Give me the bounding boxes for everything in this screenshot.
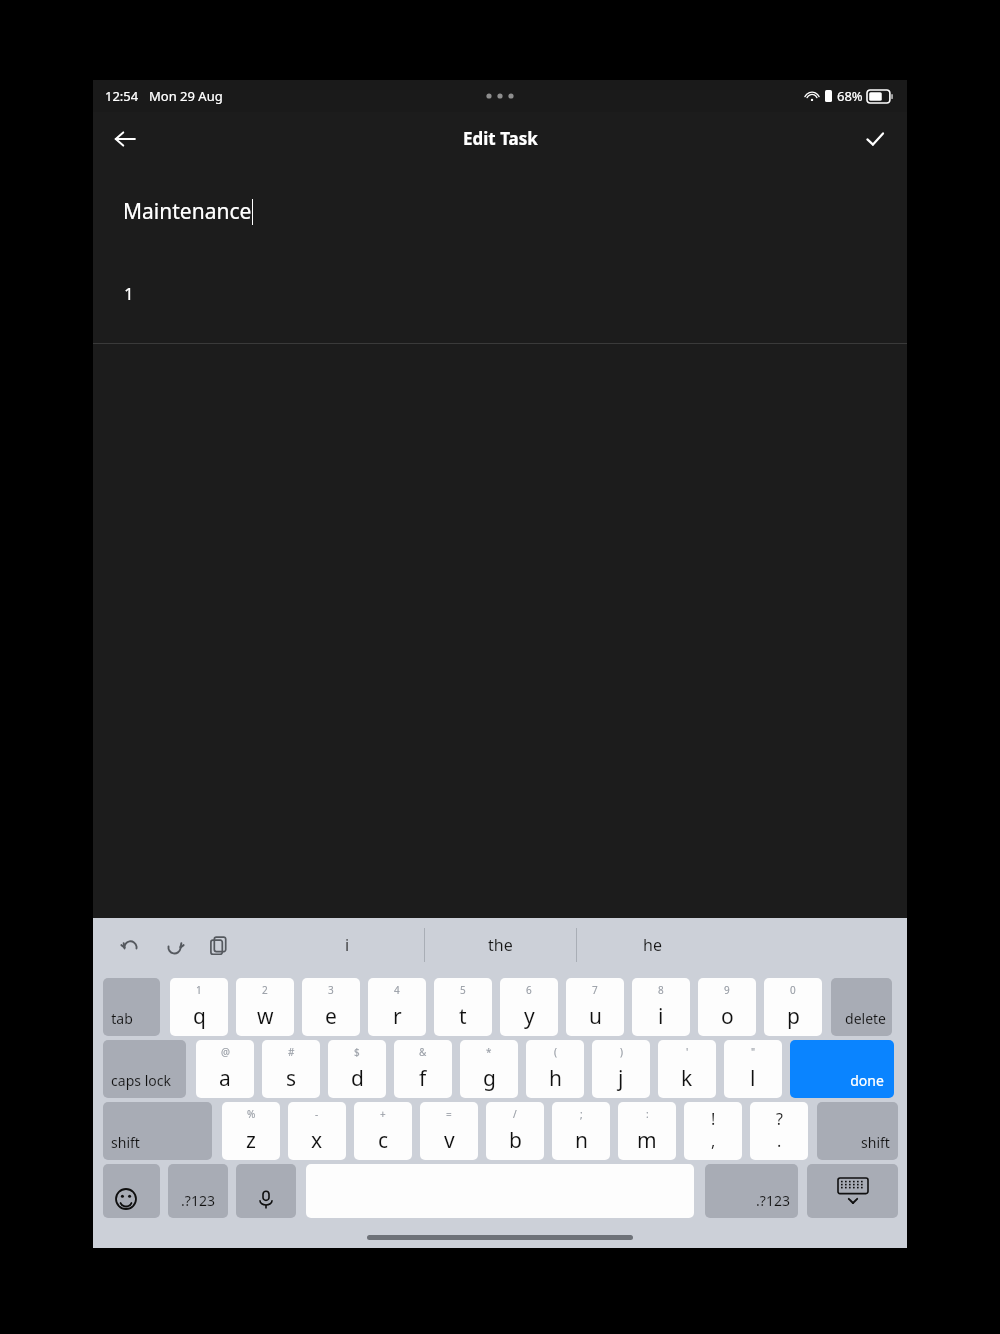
staticText: ! [711, 1108, 716, 1130]
button[interactable]: shift [103, 1102, 212, 1160]
button[interactable]: + [354, 1102, 412, 1160]
staticText: r [393, 1002, 402, 1031]
staticText: + [380, 1107, 386, 1121]
staticText: q [193, 1002, 206, 1031]
button[interactable]: ! [684, 1102, 742, 1160]
button[interactable]: Save [851, 115, 899, 163]
staticText: ' [686, 1045, 689, 1059]
button[interactable]: he [577, 918, 728, 972]
button[interactable]: 9 [698, 978, 756, 1036]
button[interactable]: " [724, 1040, 782, 1098]
button[interactable]: Undo [111, 926, 149, 964]
staticText: o [721, 1002, 734, 1031]
staticText: w [257, 1002, 274, 1031]
button[interactable]: # [262, 1040, 320, 1098]
staticText: .?123 [756, 1191, 790, 1210]
staticText: caps lock [111, 1071, 171, 1090]
button[interactable]: Hide keyboard [807, 1164, 898, 1218]
staticText: e [325, 1002, 337, 1031]
button[interactable]: 8 [632, 978, 690, 1036]
button[interactable]: % [222, 1102, 280, 1160]
button[interactable]: done [790, 1040, 894, 1098]
button[interactable]: ? [750, 1102, 808, 1160]
button[interactable]: i [271, 918, 424, 972]
staticText: 12:54 [105, 87, 139, 105]
button[interactable]: ; [552, 1102, 610, 1160]
staticText: $ [354, 1045, 360, 1059]
button[interactable]: 3 [302, 978, 360, 1036]
button[interactable]: @ [196, 1040, 254, 1098]
staticText: i [658, 1002, 664, 1031]
staticText: # [288, 1045, 295, 1059]
staticText: 6 [526, 983, 532, 997]
staticText: ( [554, 1045, 557, 1059]
staticText: . [777, 1130, 782, 1152]
staticText: / [513, 1107, 517, 1121]
button[interactable]: .?123 [705, 1164, 798, 1218]
staticText: ? [776, 1108, 783, 1130]
staticText: i [345, 934, 350, 956]
staticText: 1 [196, 983, 202, 997]
button[interactable]: the [425, 918, 576, 972]
staticText: c [378, 1126, 389, 1155]
staticText: u [589, 1002, 602, 1031]
button[interactable]: 1 [124, 282, 907, 305]
button[interactable]: * [460, 1040, 518, 1098]
button[interactable]: 0 [764, 978, 822, 1036]
staticText: Edit Task [463, 127, 538, 150]
staticText: ) [620, 1045, 623, 1059]
button[interactable]: 4 [368, 978, 426, 1036]
button[interactable]: - [288, 1102, 346, 1160]
staticText: delete [845, 1009, 886, 1028]
staticText: @ [221, 1045, 230, 1059]
button[interactable]: 6 [500, 978, 558, 1036]
staticText: 4 [394, 983, 400, 997]
staticText: the [488, 934, 513, 956]
button[interactable]: Dictation [236, 1164, 296, 1218]
button[interactable]: shift [817, 1102, 898, 1160]
staticText: l [750, 1064, 756, 1093]
staticText: he [643, 934, 662, 956]
staticText: v [444, 1126, 455, 1155]
staticText: x [311, 1126, 323, 1155]
staticText: d [351, 1064, 364, 1093]
staticText: b [509, 1126, 522, 1155]
staticText: , [711, 1130, 716, 1152]
button[interactable]: 7 [566, 978, 624, 1036]
button[interactable]: Back [101, 115, 149, 163]
button[interactable]: : [618, 1102, 676, 1160]
staticText: 1 [124, 282, 134, 305]
button[interactable]: / [486, 1102, 544, 1160]
staticText: 0 [790, 983, 796, 997]
button[interactable]: 2 [236, 978, 294, 1036]
button[interactable]: = [420, 1102, 478, 1160]
button[interactable]: Paste [199, 926, 237, 964]
staticText: k [681, 1064, 693, 1093]
staticText: tab [111, 1009, 133, 1028]
button[interactable]: Emoji [103, 1164, 160, 1218]
button[interactable]: ( [526, 1040, 584, 1098]
staticText: f [419, 1064, 427, 1093]
button[interactable]: $ [328, 1040, 386, 1098]
button[interactable]: delete [831, 978, 892, 1036]
staticText: 68% [837, 87, 863, 105]
staticText: 2 [262, 983, 268, 997]
button[interactable]: Maintenance [123, 197, 907, 226]
staticText: h [549, 1064, 562, 1093]
staticText: ; [580, 1107, 583, 1121]
staticText: Maintenance [123, 197, 252, 226]
button[interactable]: .?123 [168, 1164, 228, 1218]
button[interactable]: Redo [155, 926, 193, 964]
staticText: * [486, 1045, 492, 1059]
staticText: & [419, 1045, 427, 1059]
staticText: shift [111, 1133, 140, 1152]
button[interactable]: 5 [434, 978, 492, 1036]
button[interactable]: & [394, 1040, 452, 1098]
button[interactable]: ) [592, 1040, 650, 1098]
button[interactable]: tab [103, 978, 160, 1036]
staticText: p [787, 1002, 800, 1031]
button[interactable]: caps lock [103, 1040, 186, 1098]
button[interactable]: ' [658, 1040, 716, 1098]
button[interactable]: 1 [170, 978, 228, 1036]
